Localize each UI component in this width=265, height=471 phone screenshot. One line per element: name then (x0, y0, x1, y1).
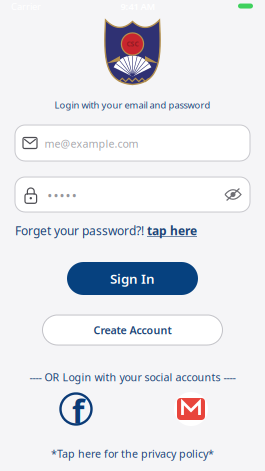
staticText: Forget your password?! (15, 222, 147, 238)
staticText: *Tap here for the privacy policy* (51, 446, 214, 461)
staticText: ---- OR Login with your social accounts … (29, 370, 235, 384)
button[interactable]: ••••• (15, 177, 250, 212)
staticText: CSC (126, 40, 138, 48)
button[interactable]: Forget your password?! (15, 222, 197, 238)
button[interactable]: Sign In (67, 262, 198, 295)
staticText: tap here (147, 222, 197, 238)
staticText: ••••• (48, 188, 76, 202)
button[interactable]: me@example.com (15, 125, 250, 161)
button[interactable]: Create Account (42, 315, 222, 345)
staticText: Create Account (93, 323, 171, 337)
staticText: me@example.com (44, 136, 138, 151)
staticText: Login with your email and password (54, 99, 210, 111)
staticText: 9:41 AM (120, 0, 155, 13)
button[interactable]: Login with Gmail (174, 392, 208, 426)
staticText: Sign In (110, 270, 155, 287)
button[interactable]: Show password (224, 187, 242, 201)
staticText: f (72, 390, 84, 432)
button[interactable]: *Tap here for the privacy policy* (51, 446, 214, 461)
button[interactable]: Login with Facebook (60, 393, 92, 425)
